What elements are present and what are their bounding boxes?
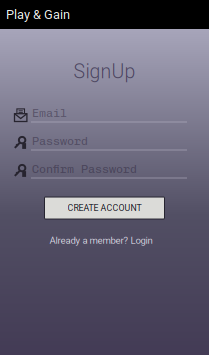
- staticText: SignUp: [73, 60, 135, 83]
- staticText: Already a member? Login: [49, 235, 152, 246]
- staticText: Email: [32, 106, 67, 120]
- button[interactable]: CREATE ACCOUNT: [44, 197, 164, 219]
- staticText: Confirm Password: [32, 162, 137, 176]
- staticText: Play & Gain: [6, 7, 70, 22]
- staticText: Password: [32, 134, 88, 148]
- button[interactable]: Already a member? Login: [49, 235, 152, 246]
- staticText: CREATE ACCOUNT: [67, 203, 141, 213]
